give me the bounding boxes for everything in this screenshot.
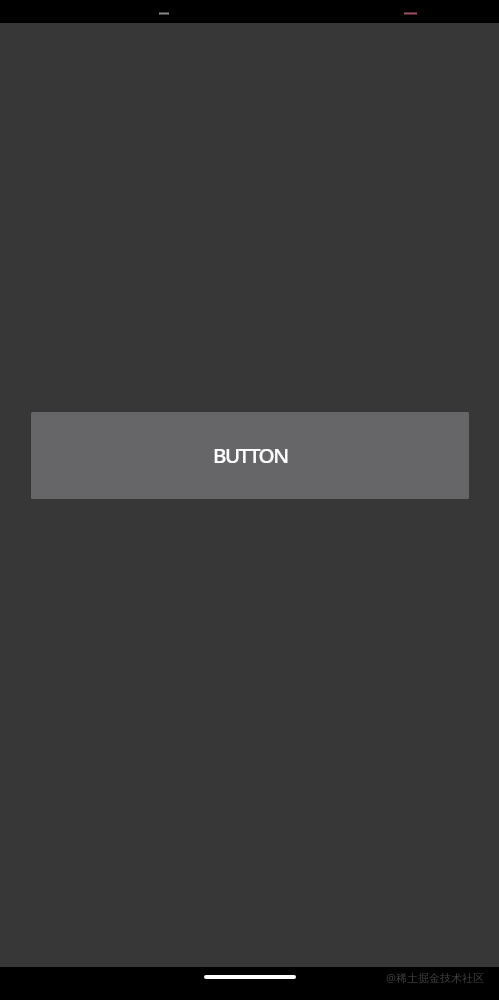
button[interactable]: BUTTON bbox=[31, 412, 469, 499]
staticText: BUTTON bbox=[213, 441, 288, 469]
staticText: @稀土掘金技术社区 bbox=[386, 970, 484, 985]
button[interactable]: Home bbox=[204, 975, 296, 979]
